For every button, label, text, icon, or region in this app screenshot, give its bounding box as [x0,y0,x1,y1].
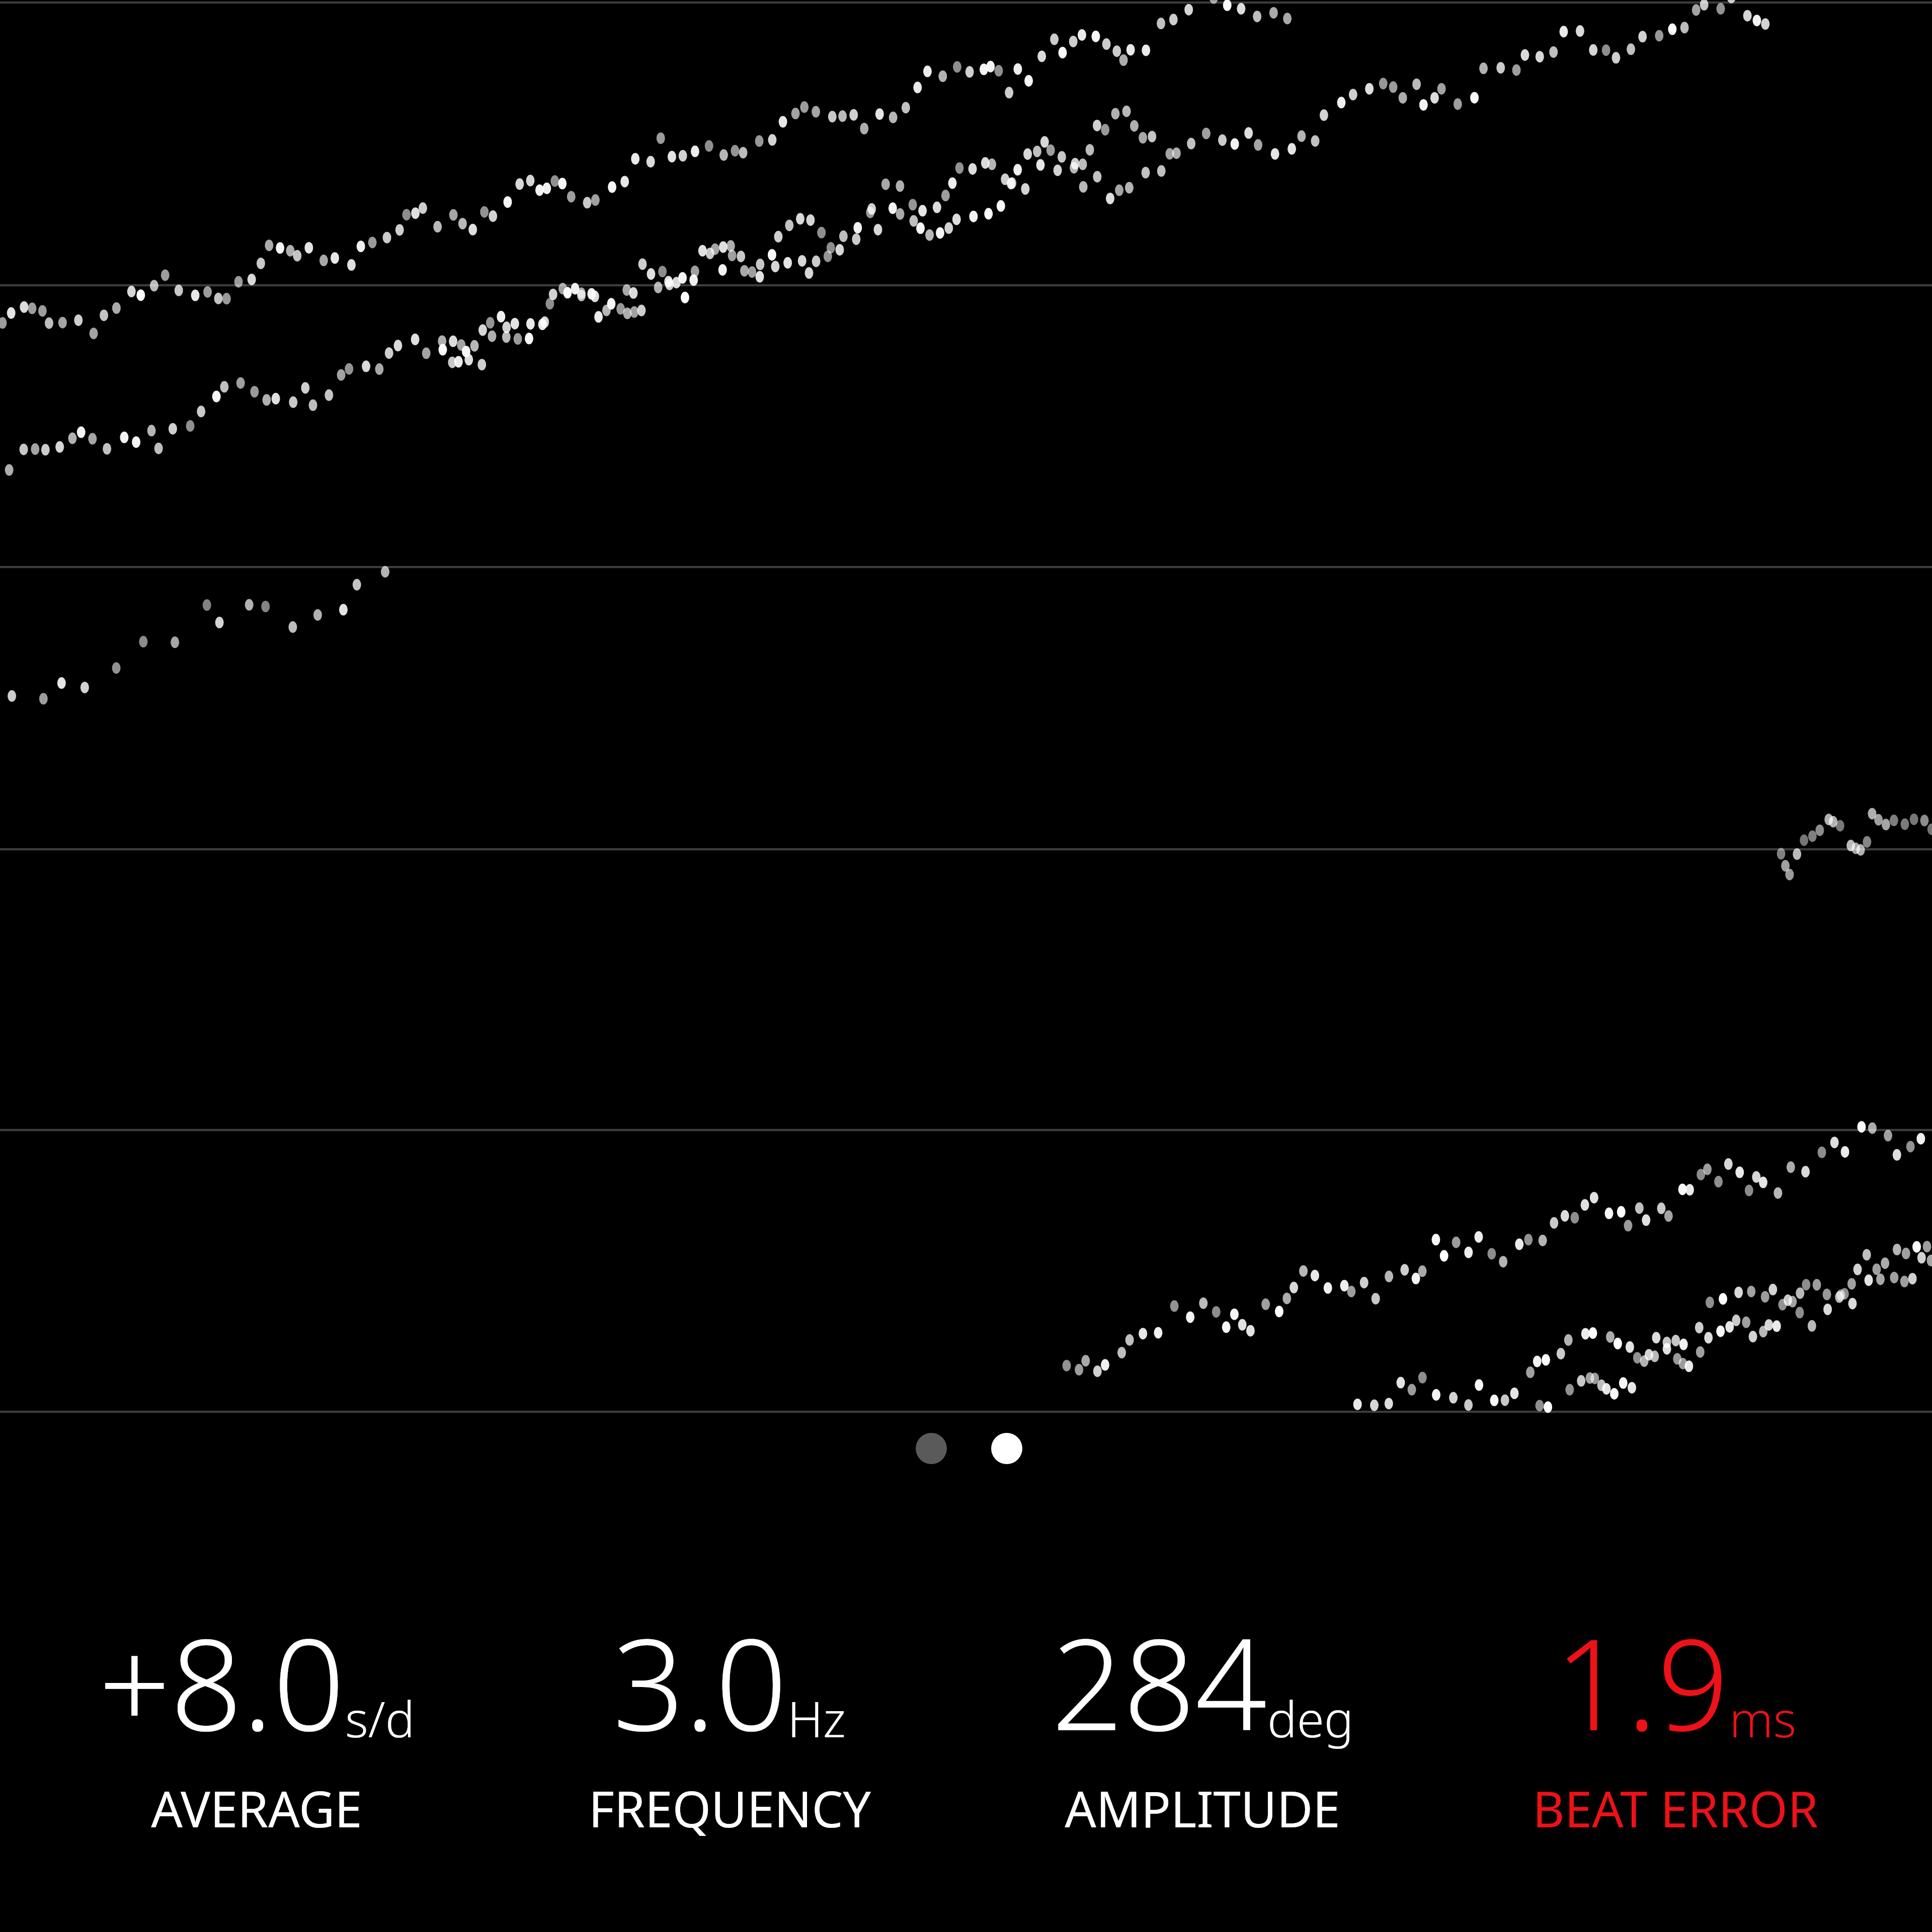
staticText: 3.0 [613,1596,787,1767]
staticText: AVERAGE [151,1775,362,1841]
staticText: 284 [1052,1596,1267,1767]
button[interactable]: Rate trace graph [0,0,1932,1415]
staticText: AMPLITUDE [1065,1775,1340,1841]
staticText: deg [1267,1684,1354,1751]
staticText: s/d [345,1684,415,1751]
staticText: FREQUENCY [589,1775,871,1841]
button[interactable]: 284 [966,1596,1439,1841]
staticText: ms [1729,1684,1797,1751]
button[interactable]: Page 1 [916,1433,947,1464]
button[interactable]: 3.0 [493,1596,966,1841]
staticText: Hz [787,1684,846,1751]
staticText: 1.9 [1555,1596,1729,1767]
button[interactable]: +8.0 [20,1596,493,1841]
button[interactable]: 1.9 [1439,1596,1912,1841]
staticText: BEAT ERROR [1533,1775,1818,1841]
staticText: +8.0 [99,1596,345,1767]
button[interactable]: Page 2, selected [991,1433,1022,1464]
